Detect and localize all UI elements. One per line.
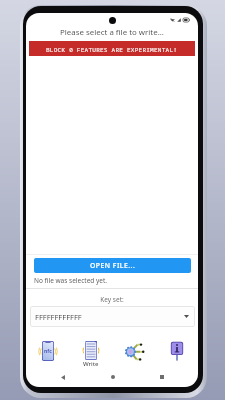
button[interactable]: FFFFFFFFFFFF bbox=[30, 306, 195, 327]
button[interactable]: OPEN FILE... bbox=[34, 258, 191, 273]
button[interactable]: Back bbox=[55, 369, 71, 385]
button[interactable]: Home bbox=[105, 369, 121, 385]
button[interactable]: Tools bbox=[114, 340, 154, 380]
button[interactable]: Read NFC tag bbox=[28, 340, 68, 380]
staticText: Please select a file to write... bbox=[26, 27, 198, 38]
button[interactable]: Info bbox=[157, 340, 197, 380]
staticText: BLOCK 0 FEATURES ARE EXPERIMENTAL! bbox=[46, 45, 178, 53]
staticText: nfc bbox=[44, 348, 52, 355]
staticText: OPEN FILE... bbox=[90, 261, 136, 270]
staticText: Key set: bbox=[26, 295, 198, 304]
staticText: No file was selected yet. bbox=[34, 276, 108, 285]
button[interactable]: Write tag bbox=[71, 340, 111, 380]
button[interactable]: Recents bbox=[154, 369, 170, 385]
staticText: FFFFFFFFFFFF bbox=[35, 312, 82, 322]
staticText: Write bbox=[83, 360, 99, 368]
